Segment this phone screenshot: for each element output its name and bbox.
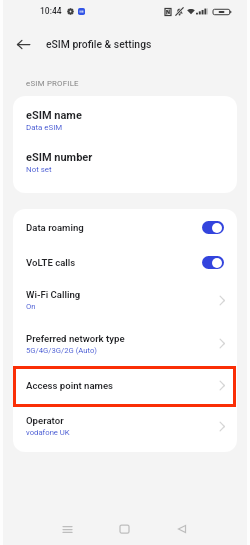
button[interactable]: eSIM name <box>13 96 237 141</box>
staticText: 10:44 <box>40 6 62 16</box>
button[interactable]: Operator <box>13 402 237 450</box>
staticText: Not set <box>26 165 52 174</box>
staticText: eSIM name <box>26 109 82 122</box>
staticText: On <box>26 302 36 311</box>
staticText: Wi-Fi Calling <box>26 289 81 300</box>
staticText: Operator <box>26 415 64 426</box>
staticText: eSIM number <box>26 151 93 164</box>
staticText: eSIM profile & settings <box>46 38 152 50</box>
button[interactable]: Home <box>109 514 139 544</box>
staticText: Access point names <box>26 380 114 391</box>
staticText: Data roaming <box>26 222 202 233</box>
button[interactable]: eSIM number <box>13 138 237 190</box>
staticText: vodafone UK <box>26 428 70 437</box>
staticText: VoLTE calls <box>26 257 202 268</box>
button[interactable]: Wi-Fi Calling <box>13 279 237 321</box>
staticText: Preferred network type <box>26 333 125 344</box>
button[interactable]: Back <box>167 514 197 544</box>
button[interactable]: Access point names <box>13 366 237 404</box>
staticText: 5G/4G/3G/2G (Auto) <box>26 346 97 355</box>
button[interactable]: Preferred network type <box>13 321 237 366</box>
staticText: Data eSIM <box>26 123 63 132</box>
button[interactable]: Recent apps <box>52 514 82 544</box>
staticText: eSIM PROFILE <box>26 79 79 88</box>
button[interactable]: Back <box>11 32 35 56</box>
button[interactable]: VoLTE calls <box>13 245 237 279</box>
button[interactable]: Data roaming <box>13 209 237 245</box>
